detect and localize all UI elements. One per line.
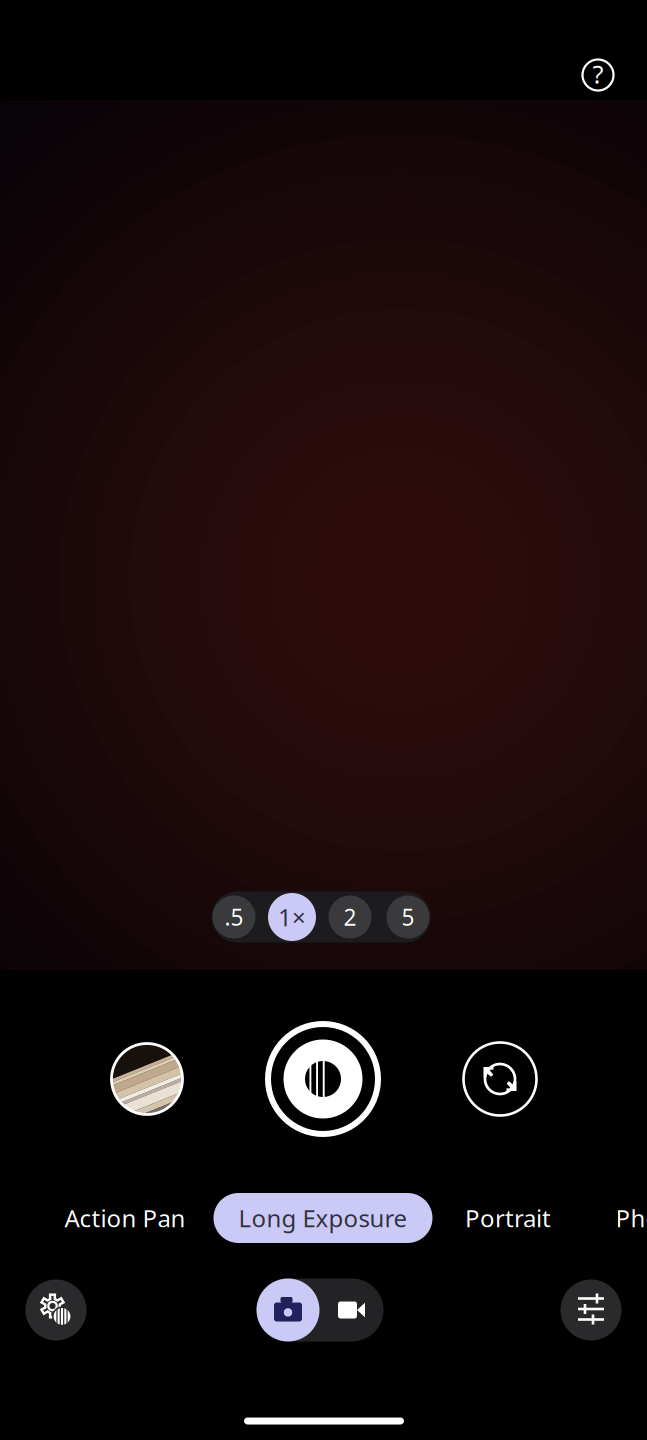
- button[interactable]: Action Pan: [52, 1193, 197, 1243]
- button[interactable]: 2: [321, 891, 379, 942]
- staticText: .5: [224, 902, 243, 932]
- button[interactable]: Video mode: [319, 1278, 383, 1341]
- button[interactable]: Settings: [559, 1278, 623, 1342]
- button[interactable]: Long exposure settings: [24, 1278, 88, 1342]
- button[interactable]: Shutter: [265, 1021, 381, 1137]
- staticText: ?: [592, 57, 603, 91]
- button[interactable]: Gallery: [109, 1041, 184, 1116]
- button[interactable]: 5: [379, 891, 437, 942]
- staticText: 5: [401, 902, 414, 932]
- button[interactable]: .5: [205, 891, 263, 942]
- button[interactable]: Photo mode: [256, 1278, 319, 1341]
- staticText: 2: [343, 902, 356, 932]
- staticText: 1×: [278, 901, 306, 933]
- button[interactable]: Photo: [603, 1193, 647, 1243]
- staticText: Photo: [615, 1202, 647, 1234]
- staticText: Portrait: [465, 1202, 551, 1234]
- button[interactable]: Portrait: [453, 1193, 563, 1243]
- staticText: Action Pan: [64, 1202, 185, 1234]
- button[interactable]: 1×: [263, 891, 321, 942]
- staticText: Long Exposure: [238, 1202, 407, 1234]
- button[interactable]: Long Exposure: [213, 1193, 432, 1243]
- button[interactable]: Help: [574, 51, 622, 99]
- button[interactable]: Switch camera: [462, 1041, 538, 1117]
